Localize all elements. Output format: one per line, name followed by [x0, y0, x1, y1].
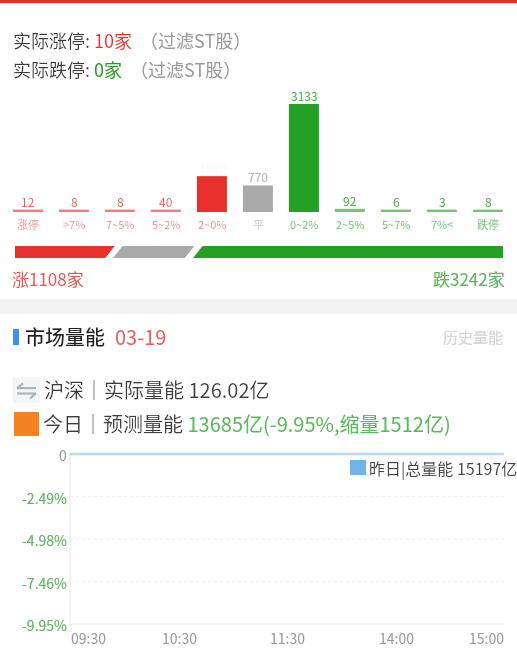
staticText: 03-19: [115, 322, 167, 351]
staticText: 5~2%: [152, 216, 181, 232]
staticText: >7%: [63, 216, 86, 232]
staticText: 15:00: [469, 628, 504, 648]
staticText: 12: [21, 193, 35, 210]
staticText: 10:30: [162, 628, 197, 648]
staticText: 2~0%: [198, 216, 227, 232]
staticText: 3: [439, 193, 446, 210]
button[interactable]: 切换市场: [13, 377, 40, 403]
staticText: 14:00: [379, 628, 414, 648]
staticText: 6: [393, 193, 400, 210]
staticText: 40: [159, 193, 173, 210]
staticText: 7%<: [431, 216, 454, 232]
staticText: -2.49%: [22, 488, 67, 508]
staticText: 涨1108家: [12, 266, 84, 291]
staticText: 11:30: [270, 628, 305, 648]
staticText: 实际涨停: 10家 （过滤ST股）: [13, 27, 252, 53]
staticText: 平: [253, 216, 264, 232]
staticText: -7.46%: [22, 573, 67, 593]
staticText: 今日｜预测量能 13685亿(-9.95%,缩量1512亿): [43, 409, 451, 438]
staticText: 8: [485, 193, 492, 210]
staticText: 市场量能: [25, 322, 105, 351]
staticText: 8: [117, 193, 124, 210]
staticText: 沪深｜实际量能 126.02亿: [44, 375, 270, 404]
staticText: 0: [59, 445, 67, 465]
staticText: 8: [71, 193, 78, 210]
staticText: 2~5%: [336, 216, 365, 232]
staticText: 跌停: [477, 216, 499, 232]
staticText: 92: [343, 192, 357, 209]
staticText: 1040: [199, 159, 226, 176]
staticText: 7~5%: [106, 216, 135, 232]
staticText: 0~2%: [290, 216, 319, 232]
staticText: 涨停: [17, 216, 39, 232]
staticText: 5~7%: [382, 216, 411, 232]
staticText: -9.95%: [22, 615, 67, 635]
staticText: 昨日|总量能 15197亿: [369, 456, 517, 479]
staticText: 实际跌停: 0家 （过滤ST股）: [13, 56, 242, 82]
staticText: 3133: [291, 87, 318, 104]
staticText: 跌3242家: [433, 266, 505, 291]
staticText: -4.98%: [22, 530, 67, 550]
staticText: 770: [248, 168, 268, 185]
button[interactable]: 历史量能: [443, 326, 504, 348]
staticText: 09:30: [71, 628, 106, 648]
